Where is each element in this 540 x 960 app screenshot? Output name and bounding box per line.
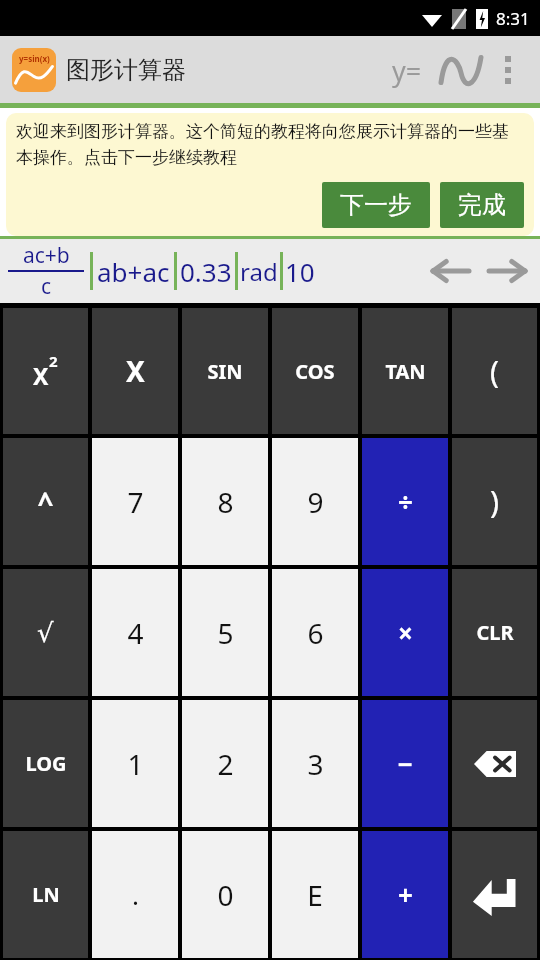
staticText: . bbox=[132, 877, 139, 912]
staticText: 0 bbox=[217, 876, 234, 914]
staticText: ) bbox=[490, 481, 499, 522]
staticText: SIN bbox=[207, 358, 243, 385]
button[interactable]: E bbox=[272, 831, 358, 958]
button[interactable]: LN bbox=[3, 831, 88, 958]
button[interactable]: 8 bbox=[182, 438, 268, 565]
button[interactable]: rad bbox=[240, 255, 278, 288]
button[interactable]: Backspace bbox=[452, 700, 537, 827]
button[interactable]: 4 bbox=[92, 569, 178, 696]
staticText: 图形计算器 bbox=[66, 55, 186, 85]
button[interactable]: 完成 bbox=[440, 182, 524, 228]
staticText: LOG bbox=[25, 750, 67, 777]
staticText: √ bbox=[37, 618, 54, 648]
button[interactable]: 7 bbox=[92, 438, 178, 565]
staticText: 6 bbox=[307, 614, 324, 652]
button[interactable]: ac+b bbox=[8, 241, 84, 301]
staticText: 5 bbox=[217, 614, 234, 652]
staticText: 下一步 bbox=[340, 190, 412, 220]
button[interactable]: 10 bbox=[285, 254, 315, 289]
staticText: 完成 bbox=[458, 190, 506, 220]
staticText: ^ bbox=[37, 483, 54, 521]
button[interactable]: X bbox=[92, 308, 178, 434]
staticText: × bbox=[398, 615, 413, 650]
button[interactable]: . bbox=[92, 831, 178, 958]
button[interactable]: 9 bbox=[272, 438, 358, 565]
button[interactable]: Enter bbox=[452, 831, 537, 958]
button[interactable]: CLR bbox=[452, 569, 537, 696]
button[interactable]: 0 bbox=[182, 831, 268, 958]
staticText: 1 bbox=[127, 745, 144, 783]
button[interactable]: ^ bbox=[3, 438, 88, 565]
staticText: − bbox=[397, 746, 413, 781]
button[interactable]: − bbox=[362, 700, 448, 827]
staticText: 8 bbox=[217, 483, 234, 521]
staticText: 2 bbox=[49, 351, 58, 371]
button[interactable]: 6 bbox=[272, 569, 358, 696]
staticText: 9 bbox=[307, 483, 324, 521]
button[interactable]: X bbox=[3, 308, 88, 434]
button[interactable]: 下一步 bbox=[322, 182, 430, 228]
staticText: 4 bbox=[127, 614, 144, 652]
button[interactable]: LOG bbox=[3, 700, 88, 827]
button[interactable]: 3 bbox=[272, 700, 358, 827]
button[interactable]: 5 bbox=[182, 569, 268, 696]
staticText: COS bbox=[295, 358, 335, 385]
staticText: ac+b bbox=[23, 241, 70, 270]
button[interactable]: 1 bbox=[92, 700, 178, 827]
button[interactable]: 2 bbox=[182, 700, 268, 827]
staticText: y=sin(x) bbox=[19, 53, 50, 64]
staticText: 2 bbox=[217, 745, 234, 783]
staticText: ÷ bbox=[398, 484, 413, 519]
staticText: ( bbox=[490, 351, 499, 392]
staticText: 3 bbox=[307, 745, 324, 783]
staticText: LN bbox=[32, 881, 60, 908]
button[interactable]: ( bbox=[452, 308, 537, 434]
button[interactable]: TAN bbox=[362, 308, 448, 434]
staticText: + bbox=[398, 877, 413, 912]
button[interactable]: SIN bbox=[182, 308, 268, 434]
button[interactable]: More options bbox=[488, 43, 528, 97]
staticText: TAN bbox=[385, 358, 426, 385]
staticText: CLR bbox=[476, 619, 514, 646]
staticText: y= bbox=[392, 52, 422, 89]
staticText: X bbox=[126, 352, 145, 390]
button[interactable]: COS bbox=[272, 308, 358, 434]
button[interactable]: ÷ bbox=[362, 438, 448, 565]
button[interactable]: Equations bbox=[380, 43, 434, 97]
button[interactable]: + bbox=[362, 831, 448, 958]
staticText: c bbox=[41, 272, 52, 301]
staticText: E bbox=[307, 876, 323, 914]
staticText: 7 bbox=[127, 483, 144, 521]
button[interactable]: × bbox=[362, 569, 448, 696]
button[interactable]: Previous bbox=[428, 248, 474, 294]
button[interactable]: ab+ac bbox=[97, 254, 170, 289]
button[interactable]: 0.33 bbox=[180, 254, 232, 289]
staticText: 8:31 bbox=[496, 7, 530, 30]
button[interactable]: Graph bbox=[434, 43, 488, 97]
staticText: X bbox=[33, 360, 49, 391]
button[interactable]: ) bbox=[452, 438, 537, 565]
button[interactable]: Next bbox=[484, 248, 530, 294]
button[interactable]: √ bbox=[3, 569, 88, 696]
staticText: 欢迎来到图形计算器。这个简短的教程将向您展示计算器的一些基本操作。点击下一步继续… bbox=[16, 121, 524, 168]
